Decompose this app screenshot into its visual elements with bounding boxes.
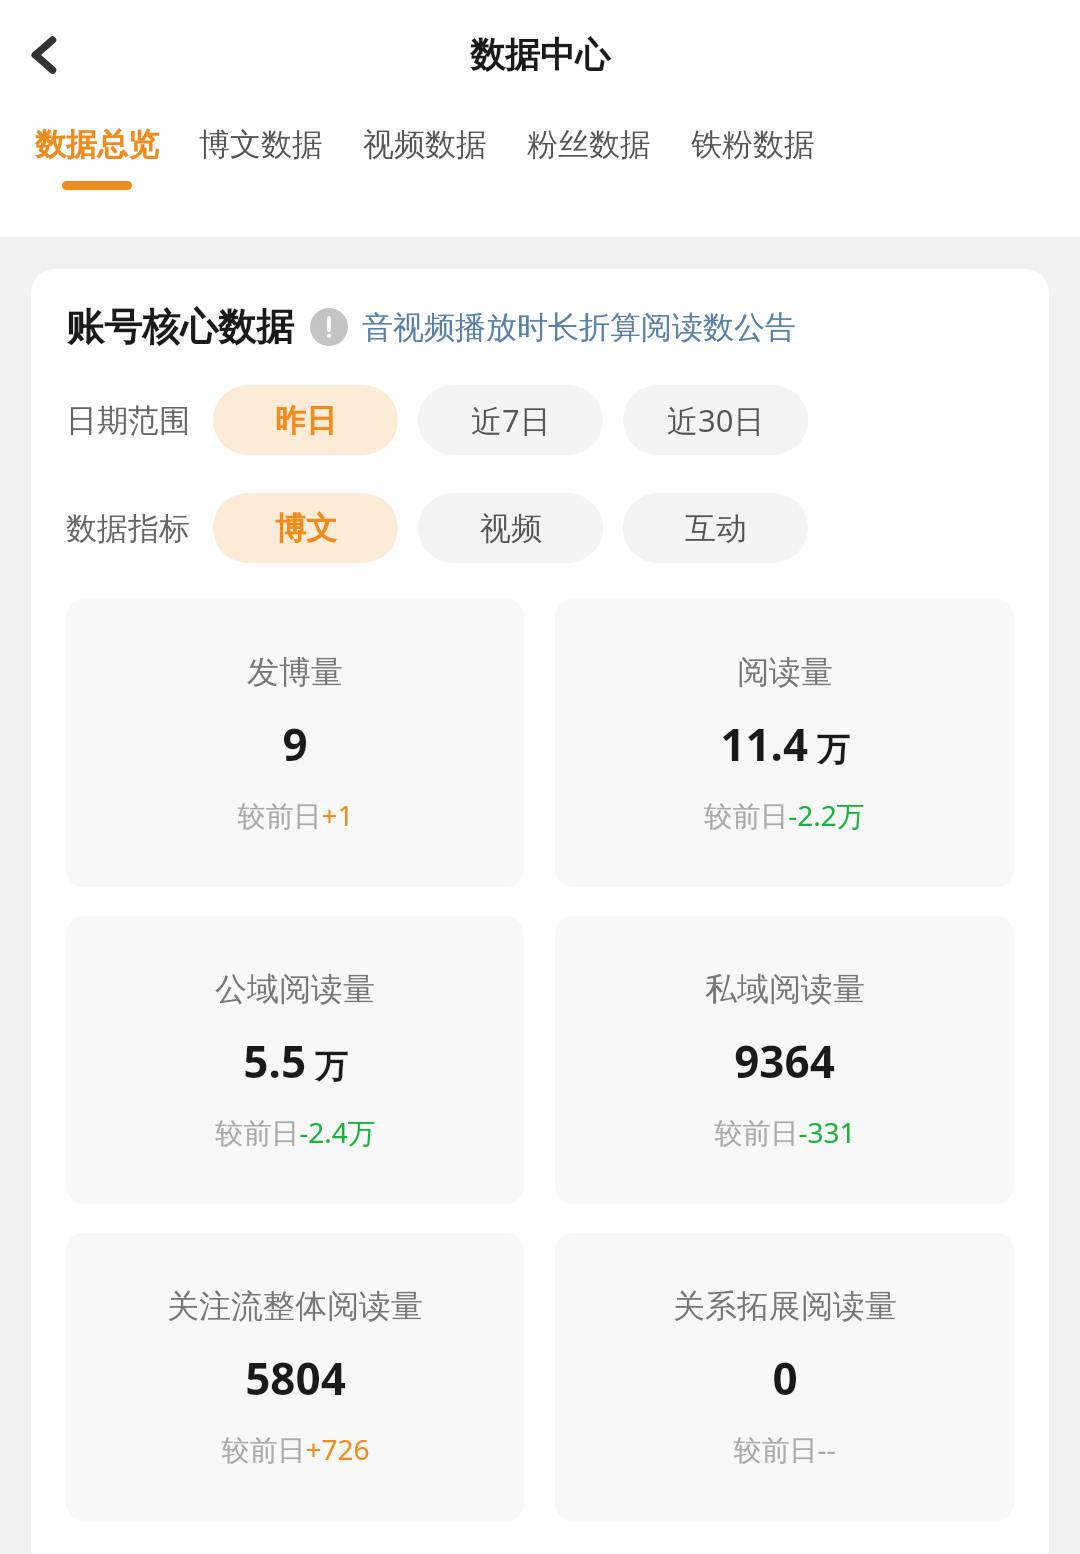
button[interactable]: 数据总览 [15, 110, 179, 237]
button[interactable]: 关系拓展阅读量 [555, 1233, 1014, 1521]
button[interactable]: 说明 [308, 306, 350, 348]
staticText: 关注流整体阅读量 [167, 1286, 423, 1326]
button[interactable]: 关注流整体阅读量 [66, 1233, 524, 1521]
staticText: 阅读量 [737, 652, 833, 692]
button[interactable]: 私域阅读量 [555, 916, 1014, 1204]
staticText: 较前日-331 [714, 1113, 856, 1151]
staticText: 粉丝数据 [527, 125, 651, 164]
staticText: 较前日+726 [221, 1430, 370, 1468]
staticText: 0 [772, 1348, 798, 1408]
staticText: 5804 [245, 1348, 346, 1408]
staticText: 互动 [685, 509, 747, 548]
button[interactable]: 视频 [418, 493, 603, 563]
staticText: 日期范围 [66, 401, 190, 440]
staticText: 博文数据 [199, 125, 323, 164]
staticText: 账号核心数据 [66, 303, 294, 351]
button[interactable]: 阅读量 [555, 599, 1014, 887]
button[interactable]: 粉丝数据 [507, 110, 671, 237]
button[interactable]: 近30日 [623, 385, 808, 455]
button[interactable]: 音视频播放时长折算阅读数公告 [362, 308, 796, 347]
staticText: 博文 [275, 509, 337, 548]
staticText: 音视频播放时长折算阅读数公告 [362, 308, 796, 347]
staticText: 9364 [734, 1031, 835, 1091]
staticText: 9 [282, 714, 308, 774]
staticText: 近30日 [667, 399, 765, 441]
button[interactable]: 铁粉数据 [671, 110, 835, 237]
button[interactable]: 博文 [213, 493, 398, 563]
staticText: 11.4 万 [720, 714, 850, 774]
button[interactable]: 博文数据 [179, 110, 343, 237]
staticText: 数据总览 [35, 125, 159, 164]
staticText: 5.5 万 [243, 1031, 348, 1091]
staticText: 发博量 [247, 652, 343, 692]
staticText: 私域阅读量 [705, 969, 865, 1009]
button[interactable]: 昨日 [213, 385, 398, 455]
button[interactable]: Back [14, 24, 76, 86]
staticText: 视频 [480, 509, 542, 548]
staticText: 较前日-2.4万 [215, 1113, 376, 1151]
staticText: 近7日 [471, 399, 551, 441]
staticText: 公域阅读量 [215, 969, 375, 1009]
button[interactable]: 近7日 [418, 385, 603, 455]
staticText: 关系拓展阅读量 [673, 1286, 897, 1326]
staticText: 铁粉数据 [691, 125, 815, 164]
button[interactable]: 互动 [623, 493, 808, 563]
staticText: 数据中心 [470, 33, 610, 77]
staticText: 数据指标 [66, 509, 190, 548]
staticText: 较前日-- [733, 1430, 836, 1468]
button[interactable]: 发博量 [66, 599, 524, 887]
staticText: 较前日-2.2万 [704, 796, 865, 834]
staticText: 视频数据 [363, 125, 487, 164]
button[interactable]: 视频数据 [343, 110, 507, 237]
button[interactable]: 公域阅读量 [66, 916, 524, 1204]
staticText: 昨日 [275, 401, 337, 440]
staticText: 较前日+1 [237, 796, 354, 834]
